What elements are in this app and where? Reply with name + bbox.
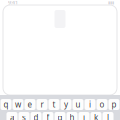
staticText: k (94, 112, 98, 120)
staticText: ▮▮▮ (108, 0, 114, 5)
button[interactable]: k (90, 112, 101, 120)
staticText: d (33, 112, 38, 120)
staticText: f (46, 112, 49, 120)
button[interactable]: p (108, 99, 119, 110)
button[interactable]: r (36, 99, 47, 110)
staticText: y (64, 99, 68, 110)
staticText: j (83, 112, 85, 120)
staticText: s (22, 112, 26, 120)
button[interactable]: i (84, 99, 95, 110)
staticText: q (3, 99, 8, 110)
staticText: e (27, 99, 32, 110)
staticText: p (111, 99, 116, 110)
button[interactable]: q (0, 99, 11, 110)
staticText: o (99, 99, 104, 110)
staticText: a (10, 112, 14, 120)
button[interactable]: a (6, 112, 17, 120)
staticText: t (52, 99, 55, 110)
button[interactable]: l (102, 112, 113, 120)
staticText: l (107, 112, 109, 120)
button[interactable]: f (42, 112, 53, 120)
button[interactable]: h (66, 112, 77, 120)
button[interactable]: s (18, 112, 29, 120)
button[interactable]: y (60, 99, 71, 110)
staticText: g (57, 112, 62, 120)
staticText: u (75, 99, 80, 110)
button[interactable]: e (24, 99, 35, 110)
button[interactable]: u (72, 99, 83, 110)
button[interactable]: w (12, 99, 23, 110)
button[interactable]: g (54, 112, 65, 120)
staticText: r (40, 99, 43, 110)
staticText: i (89, 99, 91, 110)
button[interactable]: d (30, 112, 41, 120)
button[interactable]: t (48, 99, 59, 110)
button[interactable]: o (96, 99, 107, 110)
staticText: w (15, 99, 21, 110)
staticText: h (69, 112, 74, 120)
staticText: 9:41 (8, 0, 18, 6)
button[interactable]: j (78, 112, 89, 120)
